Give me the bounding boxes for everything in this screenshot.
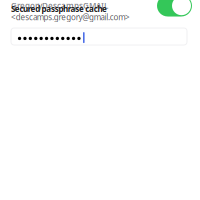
button[interactable]: Passphrase [11,28,187,45]
staticText: <descamps.gregory@gmail.com> [11,12,130,22]
button[interactable]: Secured passphrase cache [157,0,192,16]
staticText: GregoryDescampsGMAIL [11,0,108,11]
staticText: Secured passphrase cache [11,4,107,14]
